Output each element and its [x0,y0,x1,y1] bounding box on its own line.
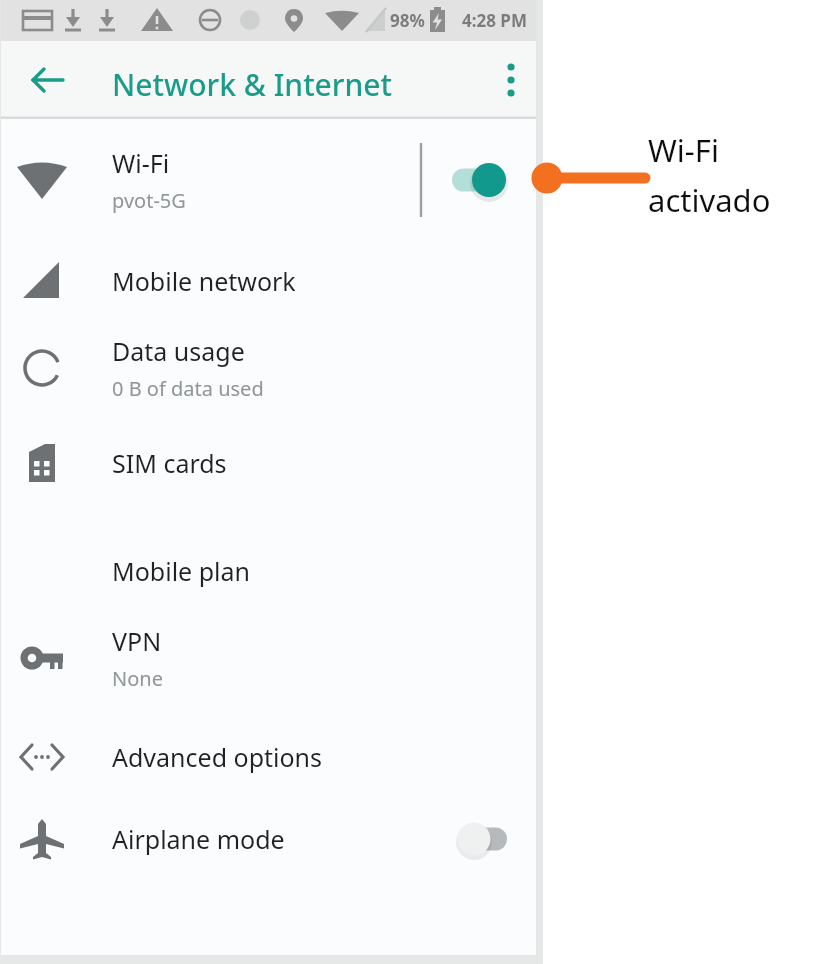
staticText: Wi-Fi [112,146,170,180]
button[interactable]: Mobile plan [1,533,536,609]
staticText: pvot-5G [112,187,186,214]
staticText: None [112,665,163,692]
staticText: Wi-Fi [648,129,719,171]
staticText: activado [648,179,771,221]
button[interactable]: Data usage [1,323,536,413]
button[interactable]: Advanced options [1,719,536,795]
staticText: Advanced options [112,740,323,774]
button[interactable]: VPN [1,613,536,703]
staticText: 0 B of data used [112,375,264,402]
staticText: 4:28 PM [462,9,527,32]
staticText: Network & Internet [112,64,393,105]
staticText: VPN [112,624,162,658]
staticText: SIM cards [112,446,227,480]
button[interactable]: Airplane mode [1,799,536,879]
staticText: Airplane mode [112,822,285,856]
button[interactable]: Wi-Fi on [450,157,512,203]
button[interactable]: SIM cards [1,425,536,501]
staticText: 98% [390,9,425,32]
button[interactable]: Mobile network [1,243,536,319]
staticText: Data usage [112,334,245,368]
staticText: Mobile network [112,264,296,298]
button[interactable]: Back [24,56,72,104]
button[interactable]: Wi-Fi [1,135,536,225]
button[interactable]: Airplane mode off [450,816,512,862]
button[interactable]: More options [487,56,535,104]
staticText: Mobile plan [112,554,250,588]
